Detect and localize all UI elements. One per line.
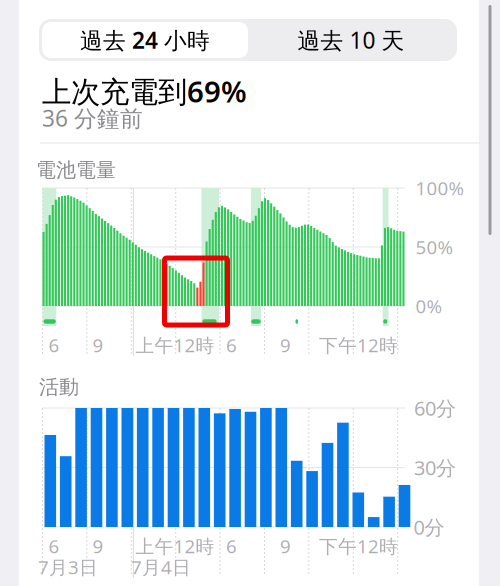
staticText: 100%: [415, 176, 464, 200]
staticText: 下午12時: [319, 333, 398, 357]
staticText: 60分: [414, 395, 456, 421]
staticText: 6: [226, 534, 237, 558]
staticText: 7月4日: [131, 555, 191, 579]
button[interactable]: 過去 24 小時: [42, 22, 248, 58]
staticText: 36 分鐘前: [42, 103, 143, 133]
staticText: 9: [92, 534, 103, 558]
staticText: 9: [280, 333, 291, 357]
staticText: 電池電量: [36, 158, 116, 182]
staticText: 0%: [415, 294, 442, 318]
staticText: 過去 10 天: [297, 25, 404, 55]
staticText: 6: [226, 333, 237, 357]
button[interactable]: 過去 10 天: [248, 22, 454, 58]
staticText: 6: [48, 333, 59, 357]
staticText: 50%: [415, 235, 453, 259]
staticText: 上午12時: [135, 333, 214, 357]
staticText: 9: [92, 333, 103, 357]
staticText: 下午12時: [319, 534, 398, 558]
staticText: 6: [48, 534, 59, 558]
staticText: 0分: [413, 514, 444, 540]
staticText: 9: [280, 534, 291, 558]
staticText: 7月3日: [38, 555, 98, 579]
staticText: 活動: [39, 375, 79, 399]
staticText: 上午12時: [135, 534, 214, 558]
staticText: 30分: [414, 454, 456, 481]
staticText: 上次充電到69%: [42, 71, 247, 110]
staticText: 過去 24 小時: [80, 25, 210, 55]
